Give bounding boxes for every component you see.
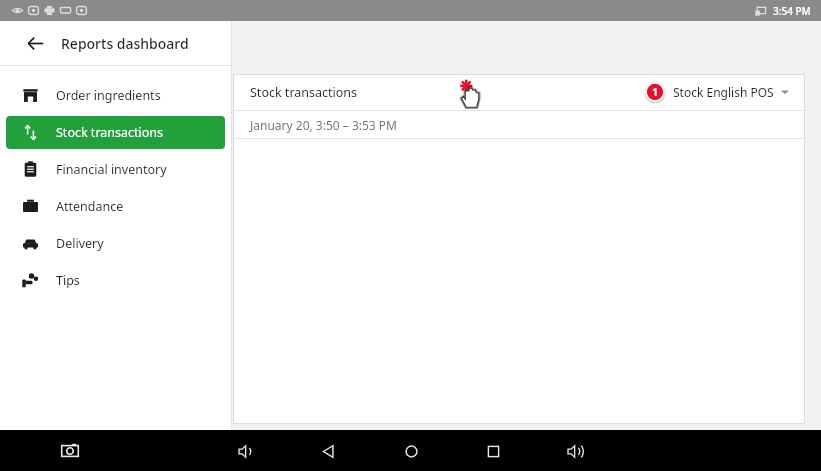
- button[interactable]: Home: [395, 435, 427, 467]
- button[interactable]: Stock transactions: [6, 116, 225, 149]
- staticText: Stock English POS: [673, 84, 774, 100]
- staticText: January 20, 3:50 – 3:53 PM: [250, 117, 397, 133]
- staticText: Reports dashboard: [61, 34, 189, 53]
- button[interactable]: Back: [0, 21, 231, 65]
- button[interactable]: Recents: [477, 435, 509, 467]
- button[interactable]: Volume up: [559, 435, 591, 467]
- staticText: Stock transactions: [250, 84, 358, 101]
- button[interactable]: Delivery: [6, 227, 225, 260]
- staticText: Order ingredients: [56, 87, 161, 104]
- staticText: 1: [652, 85, 658, 99]
- staticText: 3:54 PM: [773, 4, 811, 18]
- button[interactable]: Back: [22, 30, 48, 56]
- button[interactable]: Stock English POS: [673, 84, 789, 100]
- staticText: Tips: [56, 272, 80, 289]
- button[interactable]: Tips: [6, 264, 225, 297]
- button[interactable]: January 20, 3:50 – 3:53 PM: [233, 111, 805, 138]
- button[interactable]: Volume down: [230, 435, 262, 467]
- staticText: Stock transactions: [56, 124, 164, 141]
- button[interactable]: Financial inventory: [6, 153, 225, 186]
- other: Notification count 1: [644, 81, 666, 103]
- staticText: Delivery: [56, 235, 104, 252]
- staticText: Financial inventory: [56, 161, 167, 178]
- staticText: Attendance: [56, 198, 124, 215]
- button[interactable]: Screenshot: [55, 436, 85, 466]
- button[interactable]: Order ingredients: [6, 79, 225, 112]
- button[interactable]: Attendance: [6, 190, 225, 223]
- button[interactable]: Back: [312, 435, 344, 467]
